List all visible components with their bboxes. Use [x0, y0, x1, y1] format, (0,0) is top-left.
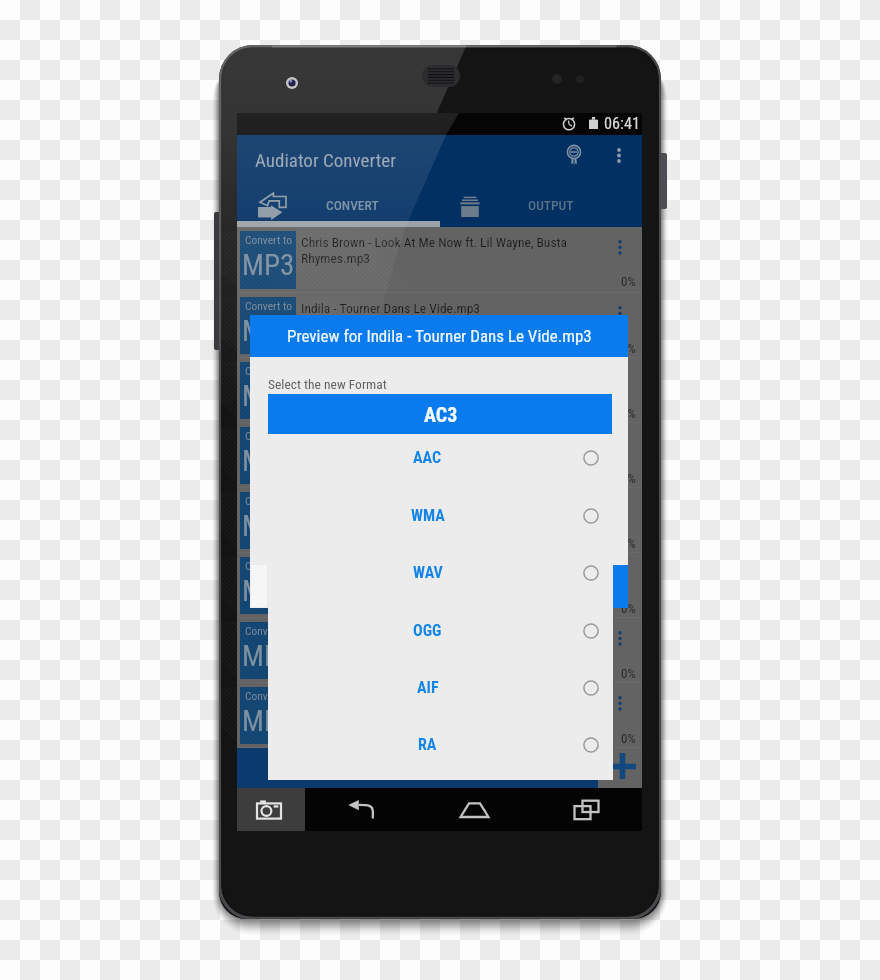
staticText: 0% — [621, 601, 636, 616]
staticText: AC3 — [424, 403, 458, 426]
staticText: Chris Brown - Look At Me Now ft. Lil Way… — [301, 234, 569, 266]
button[interactable]: CONVERT — [237, 183, 439, 227]
staticText: 0% — [621, 536, 636, 551]
staticText: 0% — [621, 471, 636, 486]
button[interactable]: Back — [305, 788, 418, 831]
staticText: 0% — [621, 274, 636, 289]
button[interactable]: Item menu — [608, 690, 632, 716]
button[interactable]: WMA — [268, 487, 613, 544]
button[interactable]: Item menu — [608, 365, 632, 391]
staticText: Indila - Tourner Dans Le Vide.mp3 — [301, 365, 569, 381]
button[interactable]: Item menu — [608, 560, 632, 586]
staticText: MP3 — [242, 509, 295, 543]
button[interactable]: Convert to — [237, 227, 642, 293]
button[interactable]: Recents — [530, 788, 642, 831]
button[interactable]: Convert to — [237, 293, 642, 358]
staticText: Convert to — [245, 299, 292, 312]
staticText: CONVERT — [326, 197, 379, 213]
button[interactable]: Item menu — [608, 234, 632, 260]
staticText: Convert to — [245, 624, 292, 637]
button[interactable]: AAC — [268, 429, 613, 486]
staticText: MP3 — [242, 444, 295, 478]
button[interactable]: OUTPUT — [439, 183, 642, 227]
staticText: MP3 — [242, 248, 295, 282]
staticText: WAV — [413, 563, 443, 582]
button[interactable]: Convert to — [237, 423, 642, 488]
staticText: 0% — [621, 731, 636, 746]
button[interactable]: AIF — [268, 659, 613, 716]
staticText: Indila - Tourner Dans Le Vide.mp3 — [301, 625, 569, 641]
staticText: 0% — [621, 666, 636, 681]
button[interactable]: WAV — [268, 544, 613, 601]
staticText: MP3 — [242, 704, 295, 738]
staticText: Convert to — [245, 364, 292, 377]
staticText: Audiator Converter — [255, 149, 397, 171]
button[interactable]: Add file — [604, 748, 640, 784]
staticText: RA — [418, 735, 437, 754]
staticText: AIF — [417, 678, 439, 697]
staticText: Preview for Indila - Tourner Dans Le Vid… — [287, 326, 592, 346]
staticText: 06:41 — [604, 114, 640, 133]
staticText: Indila - Tourner Dans Le Vide.mp3 — [301, 690, 569, 706]
staticText: MP3 — [242, 379, 295, 413]
staticText: MP3 — [242, 574, 295, 608]
button[interactable]: Rewards — [555, 135, 593, 173]
button[interactable]: AC3 — [268, 394, 612, 434]
button[interactable]: Item menu — [608, 430, 632, 456]
staticText: Indila - Tourner Dans Le Vide.mp3 — [301, 495, 569, 511]
staticText: Convert to — [245, 233, 292, 246]
staticText: Indila - Tourner Dans Le Vide.mp3 — [301, 430, 569, 446]
staticText: AAC — [413, 448, 442, 467]
staticText: Select the new Format — [268, 376, 387, 392]
button[interactable]: Convert to — [237, 683, 642, 748]
button[interactable]: Convert to — [237, 358, 642, 423]
button[interactable]: Convert to — [237, 553, 642, 618]
staticText: Convert to — [245, 689, 292, 702]
staticText: 0% — [621, 406, 636, 421]
staticText: MP3 — [242, 314, 295, 348]
button[interactable]: Item menu — [608, 300, 632, 326]
button[interactable]: More options — [604, 135, 634, 173]
staticText: OGG — [413, 621, 442, 640]
staticText: Convert to — [245, 559, 292, 572]
staticText: Indila - Tourner Dans Le Vide.mp3 — [301, 300, 569, 316]
staticText: Indila - Tourner Dans Le Vide.mp3 — [301, 560, 569, 576]
button[interactable]: Screenshot — [237, 788, 305, 831]
staticText: Convert to — [245, 494, 292, 507]
button[interactable]: Convert to — [237, 618, 642, 683]
button[interactable]: Item menu — [608, 495, 632, 521]
button[interactable]: Convert to — [237, 488, 642, 553]
button[interactable]: RA — [268, 716, 613, 773]
button[interactable]: Home — [418, 788, 530, 831]
button[interactable]: OGG — [268, 602, 613, 659]
staticText: Convert to — [245, 429, 292, 442]
staticText: OUTPUT — [528, 197, 574, 213]
staticText: WMA — [411, 506, 445, 525]
button[interactable]: Item menu — [608, 625, 632, 651]
staticText: MP3 — [242, 639, 295, 673]
staticText: 0% — [621, 341, 636, 356]
